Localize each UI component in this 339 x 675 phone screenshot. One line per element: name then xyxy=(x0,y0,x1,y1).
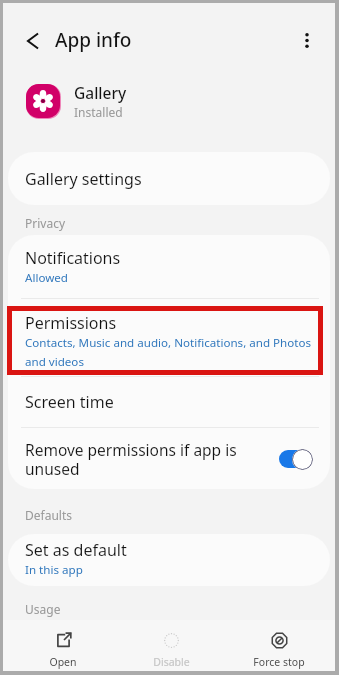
staticText: Privacy xyxy=(25,215,66,231)
staticText: Gallery xyxy=(74,82,127,103)
staticText: Remove permissions if app is unused xyxy=(25,439,261,479)
staticText: Permissions xyxy=(25,312,117,334)
staticText: Open xyxy=(49,655,77,669)
staticText: App info xyxy=(55,27,132,53)
button[interactable]: Open xyxy=(9,620,117,671)
staticText: Disable xyxy=(153,655,190,669)
button[interactable]: Gallery settings xyxy=(8,152,330,205)
staticText: Screen time xyxy=(25,391,114,413)
staticText: Defaults xyxy=(25,507,72,523)
staticText: Contacts, Music and audio, Notifications… xyxy=(25,335,312,369)
staticText: Force stop xyxy=(253,655,305,669)
button[interactable]: Notifications xyxy=(8,235,330,298)
button[interactable]: Screen time xyxy=(8,377,330,427)
button[interactable]: Permissions xyxy=(8,299,330,376)
staticText: Notifications xyxy=(25,247,121,269)
staticText: Allowed xyxy=(25,270,68,286)
staticText: Usage xyxy=(25,601,61,617)
button[interactable]: More options xyxy=(287,20,327,60)
button[interactable]: Disable xyxy=(117,620,225,671)
button[interactable]: Back xyxy=(13,21,53,61)
staticText: Set as default xyxy=(25,539,127,561)
staticText: In this app xyxy=(25,562,83,578)
staticText: Installed xyxy=(74,104,123,120)
staticText: Gallery settings xyxy=(25,168,142,190)
button[interactable]: Set as default xyxy=(8,534,330,586)
button[interactable]: Remove permissions if app is unused xyxy=(8,428,330,489)
button[interactable]: Force stop xyxy=(225,620,333,671)
